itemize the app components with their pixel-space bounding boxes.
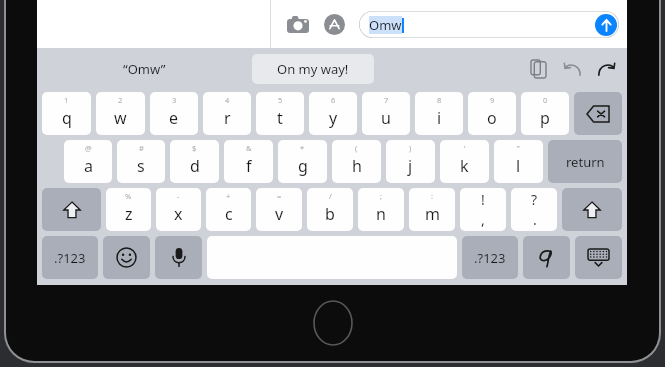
button[interactable]: -: [156, 188, 201, 231]
button[interactable]: 8: [415, 92, 463, 135]
staticText: &: [246, 143, 252, 153]
button[interactable]: /: [307, 188, 353, 231]
button[interactable]: Apps: [319, 9, 349, 39]
staticText: /: [329, 191, 332, 201]
button[interactable]: Dictation: [155, 236, 202, 279]
staticText: 5: [278, 95, 283, 105]
staticText: e: [169, 107, 179, 129]
button[interactable]: 0: [521, 92, 569, 135]
staticText: “Omw”: [123, 60, 166, 78]
staticText: p: [540, 107, 550, 129]
button[interactable]: Emoji: [103, 236, 150, 279]
staticText: Omw: [369, 16, 402, 34]
staticText: ”: [517, 143, 520, 153]
button[interactable]: ’: [440, 140, 489, 183]
button[interactable]: Handwriting: [523, 236, 570, 279]
button[interactable]: @: [64, 140, 112, 183]
button[interactable]: Paste: [521, 52, 555, 86]
staticText: q: [62, 107, 72, 129]
button[interactable]: Send: [595, 14, 617, 36]
button[interactable]: 3: [150, 92, 198, 135]
staticText: h: [352, 155, 362, 177]
button[interactable]: :: [409, 188, 455, 231]
staticText: t: [277, 107, 283, 129]
staticText: .: [533, 210, 537, 229]
button[interactable]: (: [332, 140, 381, 183]
button[interactable]: return: [548, 140, 622, 183]
button[interactable]: =: [256, 188, 302, 231]
button[interactable]: 7: [362, 92, 410, 135]
staticText: u: [381, 107, 391, 129]
button[interactable]: %: [106, 188, 151, 231]
staticText: #: [139, 143, 144, 153]
staticText: .?123: [54, 249, 86, 267]
button[interactable]: &: [224, 140, 273, 183]
button[interactable]: ?: [511, 188, 557, 231]
staticText: c: [225, 203, 233, 225]
staticText: l: [516, 155, 521, 177]
button[interactable]: ;: [358, 188, 404, 231]
staticText: =: [277, 191, 282, 201]
staticText: 8: [437, 95, 442, 105]
button[interactable]: Backspace: [574, 92, 622, 135]
staticText: 1: [64, 95, 69, 105]
staticText: 2: [118, 95, 123, 105]
button[interactable]: +: [206, 188, 251, 231]
staticText: 4: [225, 95, 230, 105]
staticText: 7: [384, 95, 389, 105]
staticText: v: [275, 203, 284, 225]
staticText: ’: [464, 143, 466, 153]
button[interactable]: 2: [96, 92, 145, 135]
button[interactable]: On my way!: [252, 54, 374, 84]
button[interactable]: .?123: [42, 236, 98, 279]
staticText: x: [174, 203, 183, 225]
staticText: f: [246, 155, 252, 177]
button[interactable]: 5: [256, 92, 304, 135]
staticText: y: [329, 107, 338, 129]
staticText: $: [192, 143, 197, 153]
staticText: b: [325, 203, 335, 225]
staticText: return: [566, 153, 605, 171]
staticText: z: [125, 203, 133, 225]
button[interactable]: Redo: [589, 52, 623, 86]
button[interactable]: 1: [42, 92, 91, 135]
button[interactable]: Undo: [555, 52, 589, 86]
button[interactable]: ): [386, 140, 435, 183]
button[interactable]: !: [460, 188, 506, 231]
staticText: -: [177, 191, 180, 201]
button[interactable]: “Omw”: [37, 48, 252, 90]
staticText: r: [224, 107, 231, 129]
staticText: s: [137, 155, 145, 177]
staticText: ,: [481, 210, 485, 229]
button[interactable]: Camera: [283, 9, 313, 39]
button[interactable]: Hide keyboard: [575, 236, 622, 279]
staticText: g: [298, 155, 308, 177]
button[interactable]: Shift: [562, 188, 622, 231]
staticText: j: [408, 155, 413, 177]
staticText: w: [114, 107, 127, 129]
button[interactable]: #: [117, 140, 165, 183]
staticText: !: [481, 190, 485, 209]
staticText: (: [355, 143, 358, 153]
button[interactable]: Shift: [42, 188, 101, 231]
staticText: +: [226, 191, 231, 201]
button[interactable]: 4: [203, 92, 251, 135]
staticText: :: [431, 191, 434, 201]
staticText: k: [460, 155, 469, 177]
staticText: %: [125, 191, 132, 201]
button[interactable]: Omw: [359, 11, 619, 38]
button[interactable]: $: [170, 140, 219, 183]
staticText: 9: [490, 95, 495, 105]
button[interactable]: .?123: [462, 236, 518, 279]
button[interactable]: *: [278, 140, 327, 183]
button[interactable]: 6: [309, 92, 357, 135]
staticText: i: [437, 107, 442, 129]
button[interactable]: ”: [494, 140, 543, 183]
staticText: @: [85, 143, 92, 153]
staticText: On my way!: [277, 60, 349, 78]
staticText: n: [376, 203, 386, 225]
button[interactable]: 9: [468, 92, 516, 135]
staticText: .?123: [474, 249, 506, 267]
staticText: d: [190, 155, 200, 177]
